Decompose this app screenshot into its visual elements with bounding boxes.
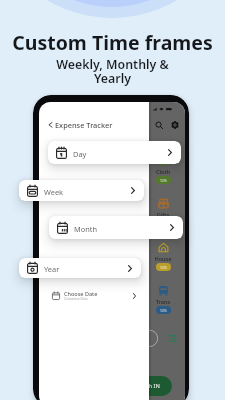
button[interactable]: Search <box>155 121 164 130</box>
button[interactable]: House <box>149 242 178 271</box>
other: Back <box>48 122 53 128</box>
staticText: House <box>149 255 178 263</box>
staticText: Day <box>73 149 87 159</box>
button[interactable]: Cloth <box>149 155 178 184</box>
staticText: Cloth <box>149 168 178 176</box>
staticText: Cash IN <box>149 382 160 390</box>
staticText: 12% <box>160 308 167 313</box>
button[interactable]: Month <box>49 216 183 239</box>
button[interactable]: Year <box>19 258 141 278</box>
button[interactable]: Cash IN <box>149 376 172 396</box>
button[interactable]: Day <box>48 141 181 164</box>
staticText: Weekly, Monthly & Yearly <box>0 56 225 87</box>
staticText: Year <box>44 264 60 274</box>
staticText: 12% <box>160 178 167 183</box>
staticText: Week <box>44 187 64 197</box>
button[interactable]: Settings <box>171 121 179 129</box>
other: List <box>168 335 177 342</box>
staticText: 12% <box>160 265 167 270</box>
staticText: Trans <box>149 298 178 306</box>
button[interactable]: Gifts <box>149 198 178 227</box>
staticText: Custom Time frames <box>0 29 225 56</box>
button[interactable]: Choose Date <box>50 287 136 304</box>
staticText: Expense Tracker <box>55 120 113 130</box>
staticText: Month <box>74 224 97 234</box>
button[interactable]: Trans <box>149 285 178 314</box>
staticText: Gifts <box>149 211 178 219</box>
staticText: Customize Date <box>64 297 88 301</box>
button[interactable]: Back <box>44 115 124 135</box>
button[interactable]: Week <box>19 180 144 201</box>
staticText: Choose Date <box>64 290 98 297</box>
